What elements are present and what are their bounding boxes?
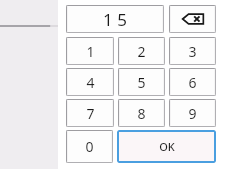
staticText: 3 bbox=[188, 42, 197, 61]
button[interactable]: 5 bbox=[118, 68, 165, 96]
staticText: 8 bbox=[137, 104, 146, 123]
staticText: 1 5 bbox=[103, 8, 127, 31]
staticText: 6 bbox=[188, 73, 197, 92]
button[interactable]: 1 bbox=[66, 37, 114, 65]
button[interactable]: 1 5 bbox=[66, 5, 164, 33]
staticText: 7 bbox=[86, 104, 95, 123]
button[interactable]: OK bbox=[117, 130, 216, 163]
staticText: 5 bbox=[137, 73, 146, 92]
staticText: 9 bbox=[188, 104, 197, 123]
button[interactable]: 6 bbox=[169, 68, 216, 96]
staticText: 0 bbox=[85, 137, 94, 156]
button[interactable]: 9 bbox=[169, 99, 216, 127]
staticText: 4 bbox=[86, 73, 95, 92]
button[interactable]: 0 bbox=[66, 130, 113, 163]
staticText: 2 bbox=[137, 42, 146, 61]
staticText: 1 bbox=[86, 42, 95, 61]
button[interactable]: 4 bbox=[66, 68, 114, 96]
button[interactable]: Backspace bbox=[169, 5, 216, 33]
button[interactable]: 2 bbox=[118, 37, 165, 65]
button[interactable]: 8 bbox=[118, 99, 165, 127]
button[interactable]: 3 bbox=[169, 37, 216, 65]
staticText: OK bbox=[159, 139, 175, 154]
button[interactable]: 7 bbox=[66, 99, 114, 127]
